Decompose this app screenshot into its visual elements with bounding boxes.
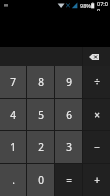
button[interactable]: + — [83, 164, 110, 196]
button[interactable]: × — [83, 99, 110, 130]
staticText: + — [94, 173, 100, 187]
staticText: 0 — [38, 173, 44, 187]
button[interactable]: − — [83, 131, 110, 163]
button[interactable]: 5 — [27, 99, 54, 130]
staticText: 07:00 — [97, 0, 110, 11]
staticText: 9 — [66, 75, 72, 89]
staticText: 5 — [38, 108, 44, 122]
button[interactable]: 1 — [0, 131, 26, 163]
staticText: 3 — [66, 140, 72, 154]
button[interactable]: 3 — [55, 131, 82, 163]
button[interactable]: ÷ — [83, 66, 110, 98]
staticText: 7 — [10, 75, 16, 89]
button[interactable]: 8 — [27, 66, 54, 98]
button[interactable]: 0 — [27, 164, 54, 196]
staticText: 98% — [80, 2, 91, 9]
button[interactable]: 2 — [27, 131, 54, 163]
staticText: . — [12, 173, 15, 187]
button[interactable]: 6 — [55, 99, 82, 130]
staticText: 6 — [66, 108, 72, 122]
staticText: 4 — [10, 108, 16, 122]
staticText: 8 — [38, 75, 44, 89]
staticText: 1 — [10, 140, 16, 154]
button[interactable]: = — [55, 164, 82, 196]
staticText: ÷ — [94, 75, 100, 89]
staticText: − — [94, 140, 100, 154]
button[interactable]: 9 — [55, 66, 82, 98]
staticText: 2 — [38, 140, 44, 154]
button[interactable]: Delete — [81, 47, 107, 66]
staticText: = — [66, 173, 72, 187]
button[interactable]: 7 — [0, 66, 26, 98]
staticText: × — [94, 108, 100, 122]
button[interactable]: . — [0, 164, 26, 196]
button[interactable]: 4 — [0, 99, 26, 130]
